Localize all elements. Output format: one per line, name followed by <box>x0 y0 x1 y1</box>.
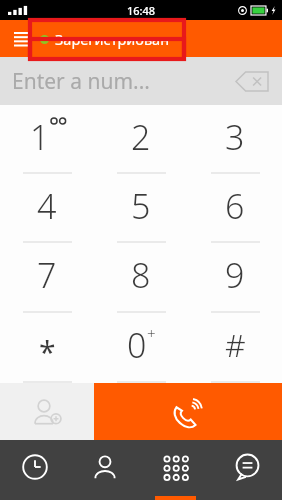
staticText: 2 <box>131 114 151 160</box>
staticText: 9 <box>225 252 245 298</box>
button[interactable]: Call <box>94 383 282 440</box>
button[interactable]: Dialpad <box>140 440 211 500</box>
staticText: 6 <box>225 183 245 229</box>
button[interactable]: 8 <box>94 243 188 313</box>
button[interactable]: 1 <box>0 105 94 174</box>
button[interactable]: 9 <box>188 243 282 313</box>
button[interactable]: Recents <box>0 440 70 500</box>
staticText: # <box>225 323 246 367</box>
button[interactable]: 4 <box>0 174 94 243</box>
staticText: 0 <box>127 322 147 368</box>
button[interactable]: Backspace <box>232 67 272 95</box>
staticText: Зарегистриован <box>55 29 170 49</box>
staticText: * <box>39 331 56 372</box>
button[interactable]: * <box>0 313 94 383</box>
staticText: 7 <box>37 252 57 298</box>
staticText: 1 <box>30 114 50 160</box>
button[interactable]: 7 <box>0 243 94 313</box>
staticText: 8 <box>131 252 151 298</box>
button[interactable]: Contacts <box>70 440 140 500</box>
button[interactable]: # <box>188 313 282 383</box>
staticText: 4 <box>37 183 57 229</box>
button[interactable]: 0 <box>94 313 188 383</box>
staticText: 5 <box>131 183 151 229</box>
staticText: 3 <box>225 114 245 160</box>
button[interactable]: 2 <box>94 105 188 174</box>
staticText: 16:48 <box>127 3 156 18</box>
button[interactable]: Messages <box>211 440 282 500</box>
button[interactable]: Зарегистриован <box>40 29 170 49</box>
button[interactable]: 6 <box>188 174 282 243</box>
staticText: + <box>147 323 156 343</box>
button[interactable]: Menu <box>8 25 36 53</box>
button[interactable]: Add contact <box>0 383 94 440</box>
staticText: Enter a num... <box>12 67 150 96</box>
button[interactable]: 3 <box>188 105 282 174</box>
button[interactable]: 5 <box>94 174 188 243</box>
